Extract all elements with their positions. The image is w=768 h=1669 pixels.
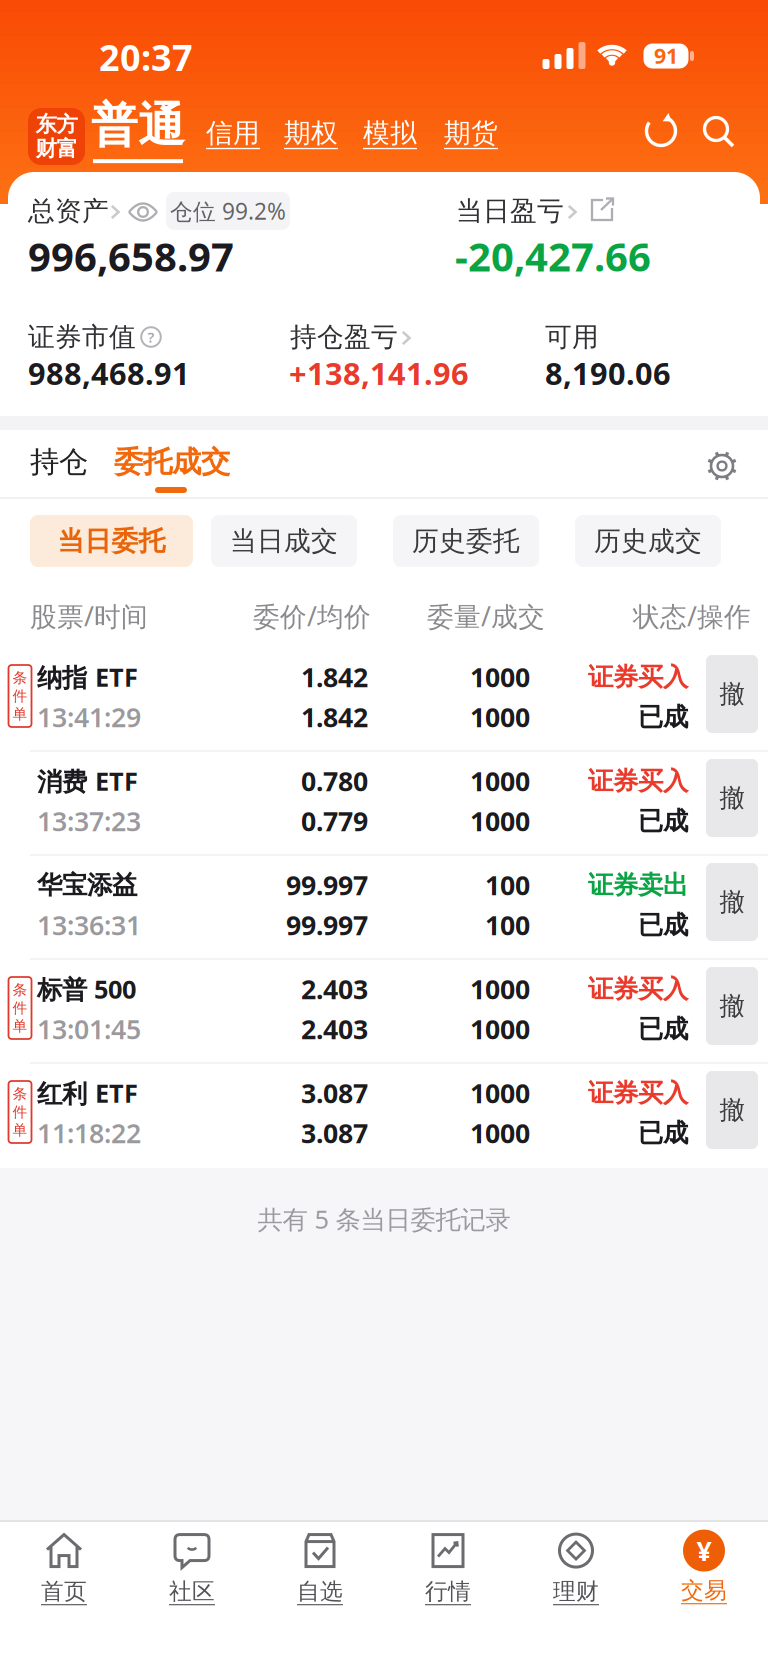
staticText: 历史委托 bbox=[412, 525, 520, 557]
button[interactable]: 社区 bbox=[132, 1523, 252, 1611]
staticText: 99.997 bbox=[286, 867, 368, 903]
staticText: 988,468.91 bbox=[28, 353, 190, 393]
staticText: 3.087 bbox=[301, 1075, 368, 1111]
staticText: ? bbox=[147, 327, 154, 347]
staticText: 100 bbox=[485, 907, 530, 943]
staticText: 撤 bbox=[719, 678, 744, 709]
staticText: 1000 bbox=[470, 1115, 530, 1151]
staticText: 期货 bbox=[444, 117, 498, 149]
staticText: 可用 bbox=[545, 321, 599, 353]
button[interactable]: 历史成交 bbox=[575, 515, 721, 567]
staticText: 华宝添益 bbox=[37, 869, 137, 900]
staticText: 13:01:45 bbox=[37, 1011, 141, 1047]
staticText: 0.779 bbox=[301, 803, 368, 839]
staticText: 证券买入 bbox=[588, 973, 688, 1004]
button[interactable]: 撤 bbox=[706, 1071, 758, 1149]
button[interactable]: 期权 bbox=[284, 117, 338, 149]
staticText: 3.087 bbox=[301, 1115, 368, 1151]
staticText: 撤 bbox=[719, 1094, 744, 1125]
button[interactable]: 分享 bbox=[589, 197, 615, 223]
staticText: 单 bbox=[12, 1017, 27, 1035]
button[interactable]: 隐藏资产 bbox=[127, 201, 159, 223]
button[interactable]: 撤 bbox=[706, 863, 758, 941]
staticText: 13:36:31 bbox=[37, 907, 141, 943]
staticText: 理财 bbox=[553, 1578, 599, 1605]
button[interactable]: 撤 bbox=[706, 655, 758, 733]
staticText: 撤 bbox=[719, 886, 744, 917]
staticText: 证券市值 bbox=[28, 321, 136, 353]
staticText: 条 bbox=[12, 669, 27, 687]
staticText: 当日成交 bbox=[230, 525, 338, 557]
staticText: 1000 bbox=[470, 659, 530, 695]
button[interactable]: 刷新 bbox=[642, 112, 680, 150]
button[interactable]: 期货 bbox=[444, 117, 498, 149]
staticText: 20:37 bbox=[99, 33, 193, 81]
staticText: 委价/均价 bbox=[253, 598, 371, 634]
staticText: 历史成交 bbox=[594, 525, 702, 557]
staticText: 证券买入 bbox=[588, 765, 688, 796]
staticText: 仓位 99.2% bbox=[170, 196, 286, 226]
button[interactable]: 当日成交 bbox=[211, 515, 357, 567]
staticText: 件 bbox=[12, 999, 27, 1017]
staticText: 首页 bbox=[41, 1578, 87, 1605]
button[interactable]: 当日委托 bbox=[30, 515, 193, 567]
staticText: 委托成交 bbox=[114, 444, 230, 480]
staticText: 纳指 ETF bbox=[37, 660, 138, 694]
staticText: 信用 bbox=[206, 117, 260, 149]
staticText: 条 bbox=[12, 981, 27, 999]
staticText: -20,427.66 bbox=[455, 229, 651, 282]
button[interactable]: 搜索 bbox=[702, 115, 736, 149]
button[interactable]: 理财 bbox=[516, 1523, 636, 1611]
staticText: 财富 bbox=[35, 135, 77, 162]
staticText: 已成 bbox=[638, 1117, 688, 1148]
staticText: 91 bbox=[654, 41, 678, 70]
staticText: 1000 bbox=[470, 971, 530, 1007]
button[interactable]: 持仓 bbox=[9, 438, 109, 486]
staticText: 股票/时间 bbox=[30, 598, 148, 634]
staticText: 已成 bbox=[638, 1013, 688, 1044]
button[interactable]: 普通 bbox=[91, 97, 185, 163]
staticText: 证券买入 bbox=[588, 661, 688, 692]
button[interactable]: 模拟 bbox=[363, 117, 417, 149]
staticText: 撤 bbox=[719, 990, 744, 1021]
staticText: 1.842 bbox=[301, 699, 368, 735]
staticText: 2.403 bbox=[301, 971, 368, 1007]
staticText: 已成 bbox=[638, 701, 688, 732]
staticText: 0.780 bbox=[301, 763, 368, 799]
staticText: 模拟 bbox=[363, 117, 417, 149]
staticText: 件 bbox=[12, 687, 27, 705]
button[interactable]: 信用 bbox=[206, 117, 260, 149]
button[interactable]: 行情 bbox=[388, 1523, 508, 1611]
staticText: ¥ bbox=[696, 1533, 711, 1568]
button[interactable]: 首页 bbox=[4, 1523, 124, 1611]
button[interactable]: 历史委托 bbox=[393, 515, 539, 567]
staticText: 消费 ETF bbox=[37, 764, 138, 798]
staticText: 红利 ETF bbox=[37, 1076, 138, 1110]
staticText: 委量/成交 bbox=[427, 598, 545, 634]
staticText: 已成 bbox=[638, 909, 688, 940]
staticText: 标普 500 bbox=[37, 972, 136, 1006]
staticText: 期权 bbox=[284, 117, 338, 149]
staticText: 1000 bbox=[470, 1075, 530, 1111]
staticText: 总资产 bbox=[28, 195, 109, 227]
staticText: +138,141.96 bbox=[289, 353, 469, 393]
staticText: 持仓盈亏 bbox=[290, 321, 398, 353]
staticText: 状态/操作 bbox=[633, 598, 751, 634]
button[interactable]: 设置 bbox=[705, 449, 739, 483]
staticText: 证券卖出 bbox=[588, 869, 688, 900]
staticText: 当日委托 bbox=[57, 525, 165, 557]
staticText: 交易 bbox=[681, 1577, 727, 1604]
staticText: 普通 bbox=[91, 97, 185, 154]
staticText: 撤 bbox=[719, 782, 744, 813]
button[interactable]: ¥ bbox=[644, 1523, 764, 1611]
button[interactable]: 自选 bbox=[260, 1523, 380, 1611]
button[interactable]: 委托成交 bbox=[102, 438, 242, 486]
staticText: 社区 bbox=[169, 1578, 215, 1605]
button[interactable]: 东方财富 bbox=[28, 108, 85, 165]
staticText: 单 bbox=[12, 705, 27, 723]
staticText: 单 bbox=[12, 1121, 27, 1139]
staticText: 自选 bbox=[297, 1578, 343, 1605]
button[interactable]: 撤 bbox=[706, 759, 758, 837]
staticText: 8,190.06 bbox=[545, 353, 671, 393]
button[interactable]: 撤 bbox=[706, 967, 758, 1045]
